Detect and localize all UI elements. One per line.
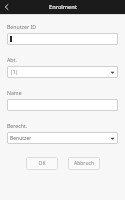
staticText: Abbruch — [74, 160, 94, 167]
staticText: Name — [7, 89, 22, 96]
staticText: OK — [38, 160, 46, 167]
button[interactable]: Back — [0, 0, 14, 14]
staticText: |1| — [10, 69, 19, 76]
button[interactable] — [7, 33, 118, 45]
staticText: Benutzer ID — [7, 23, 36, 30]
staticText: Benutzer — [10, 135, 32, 142]
button[interactable]: |1| — [7, 66, 118, 78]
button[interactable]: Benutzer — [7, 132, 118, 144]
staticText: Abt. — [7, 56, 17, 63]
button[interactable] — [7, 99, 118, 111]
staticText: Berecht. — [7, 122, 28, 129]
button[interactable]: OK — [26, 157, 58, 170]
staticText: Enrolment — [49, 3, 77, 11]
button[interactable]: Abbruch — [68, 157, 100, 170]
